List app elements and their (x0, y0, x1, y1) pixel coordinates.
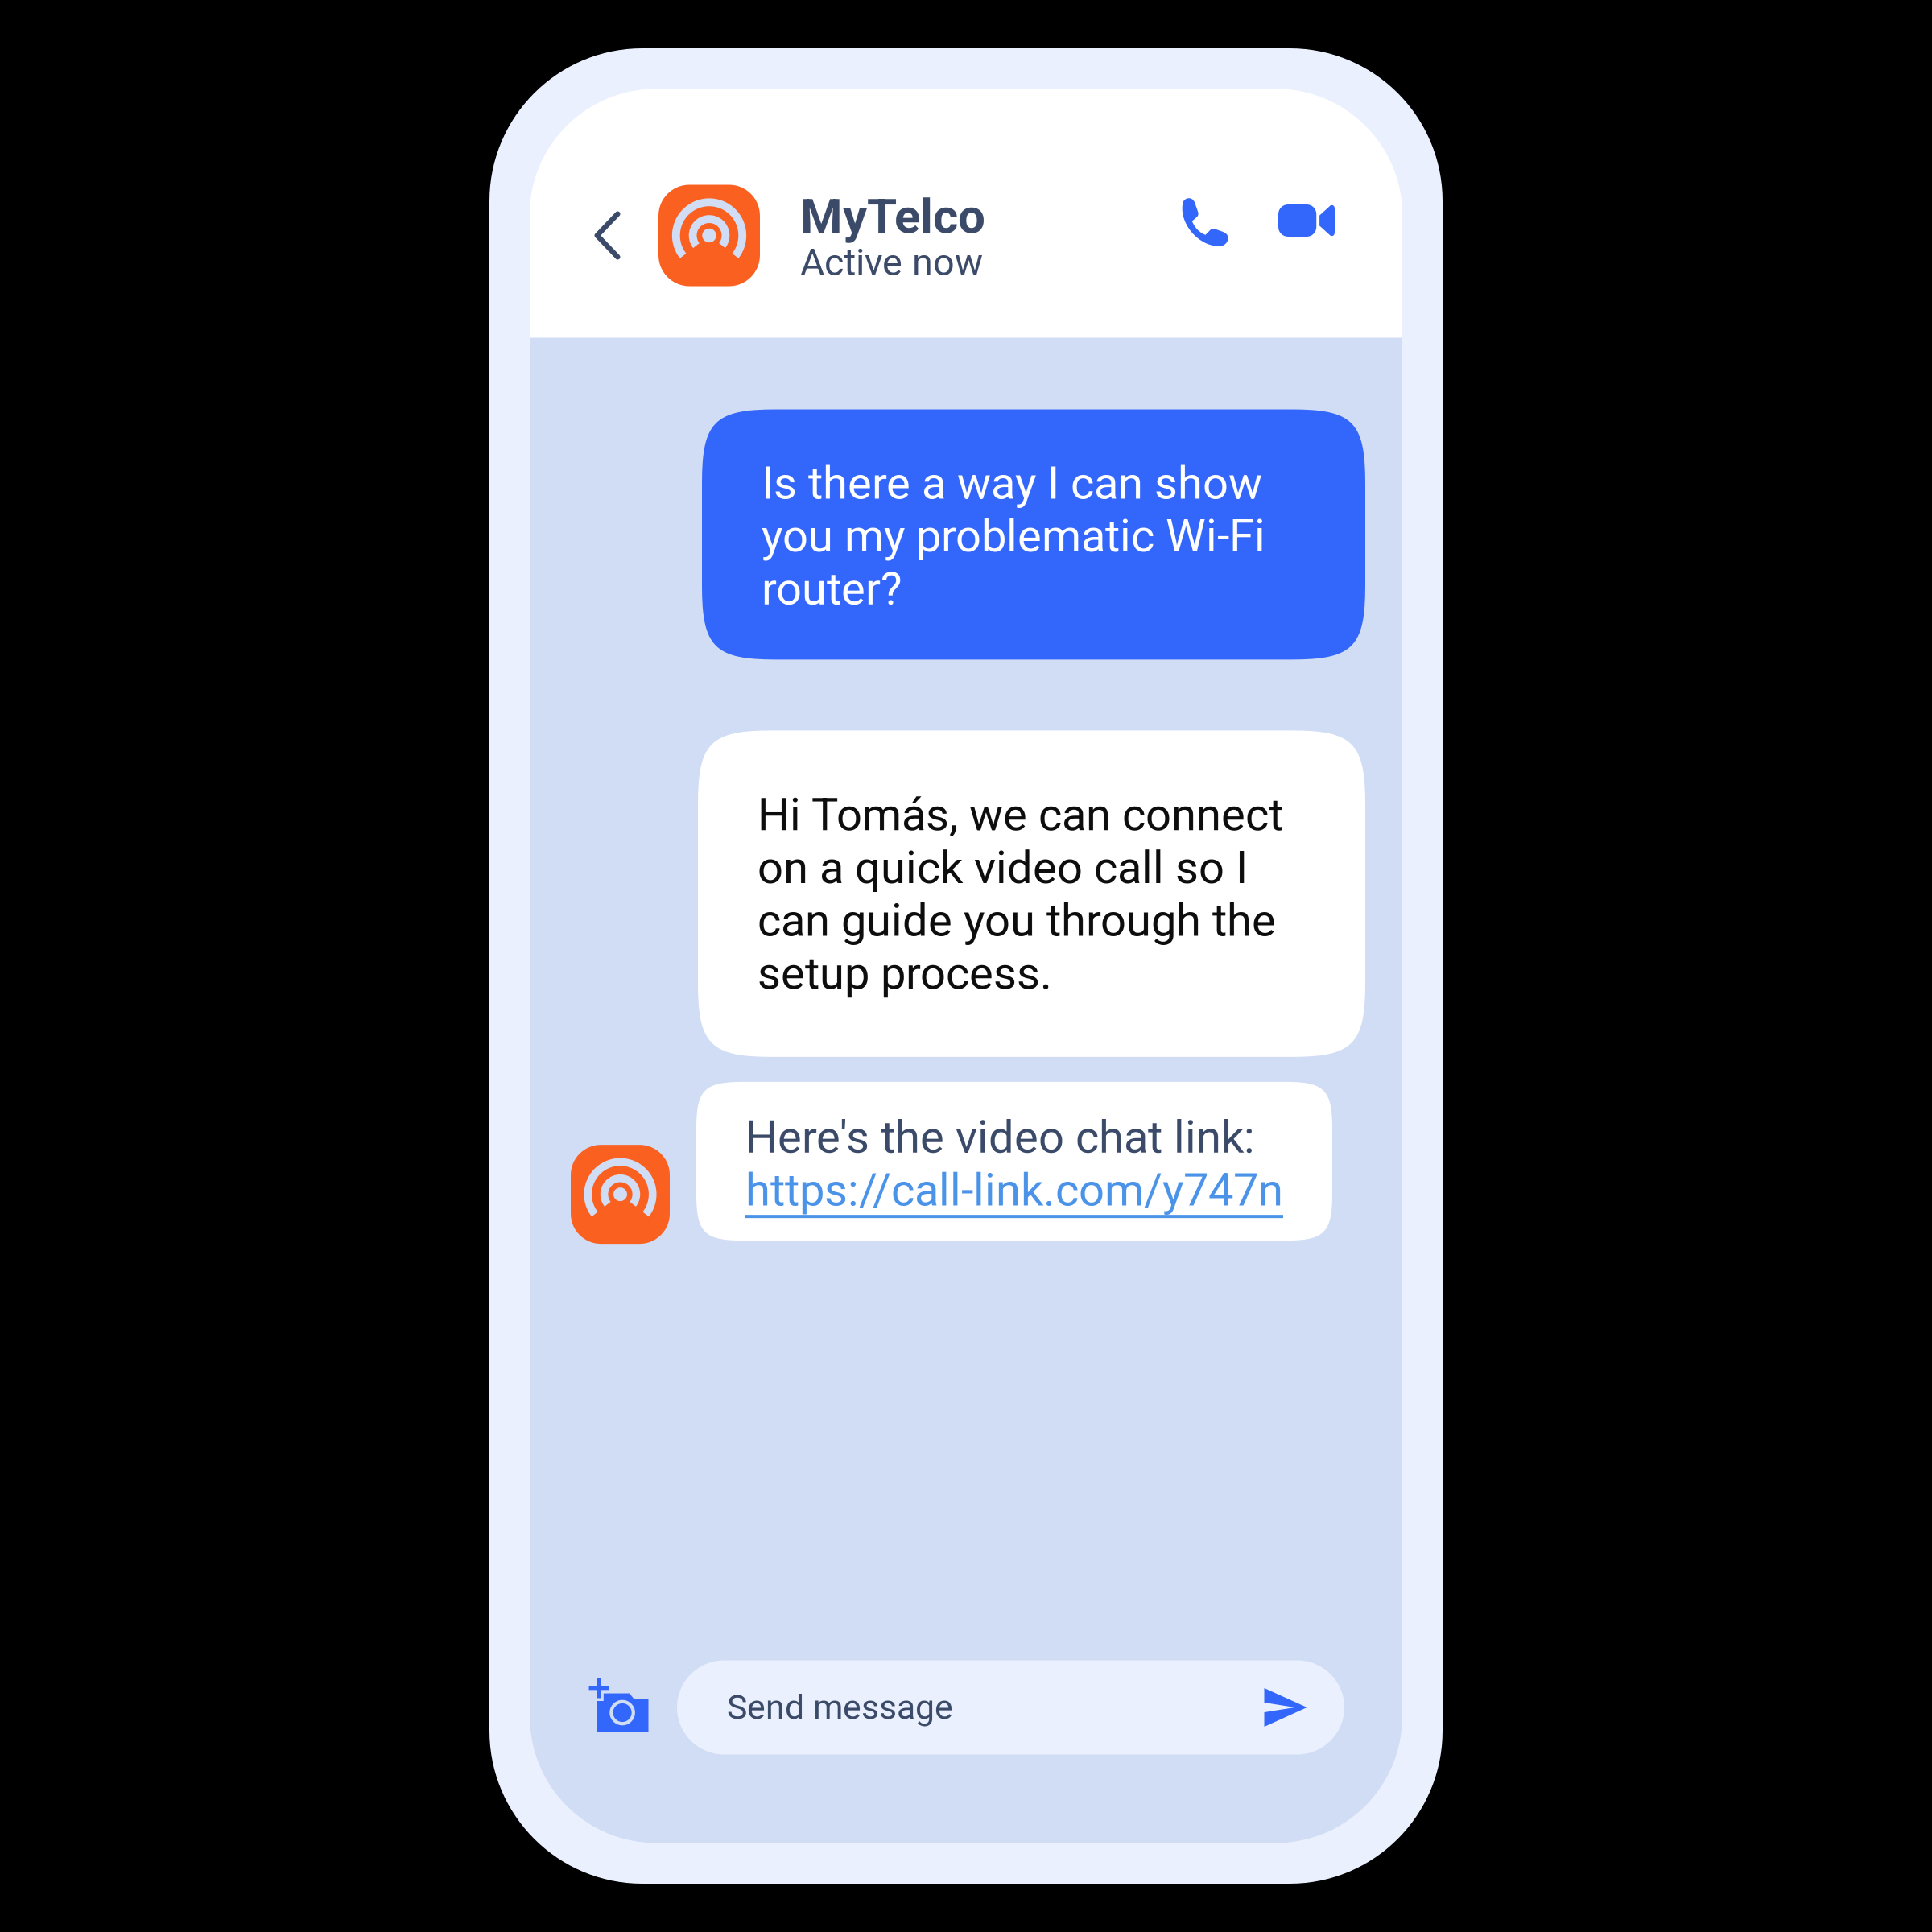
staticText: Hi Tomás, we can connect on a quick vide… (758, 788, 1283, 1000)
button[interactable]: Add photo (557, 1660, 677, 1754)
button[interactable]: Back (562, 185, 653, 286)
staticText: MyTelco (800, 188, 985, 245)
staticText: Send message (727, 1687, 953, 1728)
staticText: Here's the video chat link: (745, 1111, 1255, 1164)
staticText: Is there a way I can show you my problem… (762, 457, 1265, 615)
button[interactable]: Video call (1257, 185, 1353, 286)
button[interactable]: https://call-link.com/y747n (745, 1164, 1283, 1216)
button[interactable]: Call (1157, 185, 1257, 286)
staticText: Active now (800, 241, 983, 285)
staticText: https://call-link.com/y747n (745, 1164, 1283, 1216)
button[interactable]: Send (1230, 1660, 1344, 1754)
